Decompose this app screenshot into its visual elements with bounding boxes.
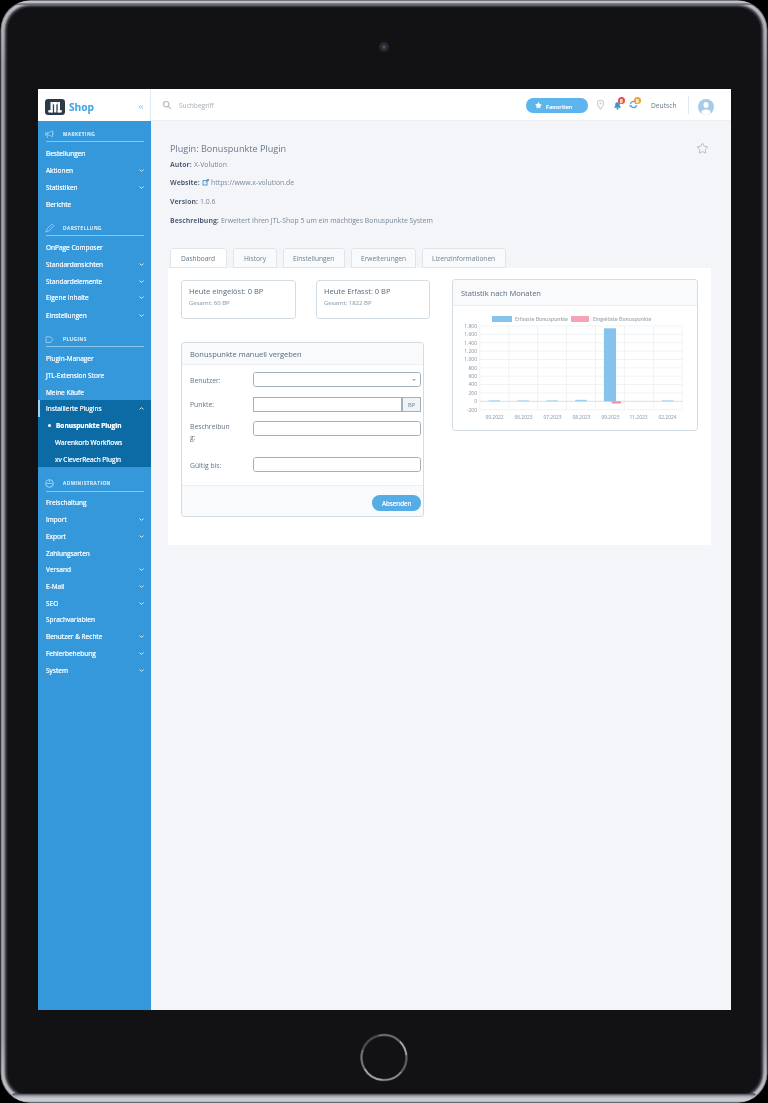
- button[interactable]: Standardelemente: [38, 273, 151, 290]
- staticText: Punkte:: [190, 400, 215, 409]
- staticText: Version:: [170, 197, 198, 206]
- button[interactable]: OnPage Composer: [38, 239, 151, 256]
- staticText: Installierte Plugins: [46, 404, 102, 413]
- button[interactable]: Dashboard: [170, 248, 227, 268]
- staticText: Suchbegriff: [179, 101, 214, 110]
- button[interactable]: Benutzerkonto: [698, 99, 714, 115]
- staticText: Lizenzinformationen: [432, 254, 496, 263]
- button[interactable]: Statistiken: [38, 179, 151, 196]
- staticText: 06.2023: [514, 414, 533, 421]
- button[interactable]: Fehlerbehebung: [38, 645, 151, 662]
- button[interactable]: Standardansichten: [38, 256, 151, 273]
- staticText: 07.2023: [543, 414, 562, 421]
- button[interactable]: Sprachvariablen: [38, 611, 151, 628]
- button[interactable]: Einstellungen: [38, 307, 151, 324]
- button[interactable]: Lizenzinformationen: [422, 248, 506, 268]
- button[interactable]: [253, 457, 421, 472]
- staticText: MARKETING: [63, 131, 96, 137]
- button[interactable]: Favoriten: [526, 98, 588, 113]
- staticText: X-Volution: [194, 160, 227, 169]
- button[interactable]: Export: [38, 528, 151, 545]
- button[interactable]: Aktionen: [38, 162, 151, 179]
- button[interactable]: Erweiterungen: [351, 248, 416, 268]
- staticText: PLUGINS: [63, 336, 87, 342]
- button[interactable]: Bonuspunkte Plugin: [38, 417, 151, 434]
- staticText: https://www.x-volution.de: [211, 178, 295, 187]
- button[interactable]: Heute eingelöst: 0 BP: [181, 280, 296, 319]
- button[interactable]: Berichte: [38, 196, 151, 213]
- button[interactable]: Benachrichtigungen: [613, 97, 626, 110]
- button[interactable]: E-Mail: [38, 578, 151, 595]
- staticText: 400: [468, 381, 477, 388]
- staticText: Standardelemente: [46, 277, 103, 286]
- staticText: Bonuspunkte manuell vergeben: [190, 349, 302, 359]
- button[interactable]: Freischaltung: [38, 494, 151, 511]
- button[interactable]: [253, 421, 421, 436]
- staticText: 11.2023: [629, 414, 648, 421]
- button[interactable]: [253, 372, 421, 387]
- staticText: Export: [46, 532, 66, 541]
- staticText: 09.2022: [485, 414, 504, 421]
- staticText: Statistiken: [46, 183, 78, 192]
- staticText: 0: [620, 98, 623, 104]
- staticText: Statistik nach Monaten: [461, 288, 541, 298]
- button[interactable]: Einstellungen: [283, 248, 345, 268]
- staticText: 1.200: [464, 348, 477, 355]
- staticText: History: [244, 254, 266, 263]
- staticText: Freischaltung: [46, 498, 87, 507]
- button[interactable]: JTL-Extension Store: [38, 367, 151, 384]
- other: Standort: [596, 100, 605, 109]
- staticText: Fehlerbehebung: [46, 649, 96, 658]
- button[interactable]: xv CleverReach Plugin: [38, 451, 151, 468]
- staticText: 800: [468, 365, 477, 372]
- staticText: Standardansichten: [46, 260, 104, 269]
- staticText: System: [46, 666, 68, 675]
- button[interactable]: Import: [38, 511, 151, 528]
- button[interactable]: Deutsch: [651, 101, 677, 110]
- staticText: 1.000: [464, 356, 477, 363]
- button[interactable]: Installierte Plugins: [38, 400, 151, 417]
- staticText: OnPage Composer: [46, 243, 103, 252]
- staticText: Erweitert Ihren JTL-Shop 5 um ein mächti…: [221, 216, 433, 225]
- staticText: 1.400: [464, 340, 477, 347]
- button[interactable]: Shop: [38, 89, 151, 121]
- staticText: Heute eingelöst: 0 BP: [189, 286, 264, 296]
- staticText: Berichte: [46, 200, 72, 209]
- button[interactable]: Als Favorit markieren: [695, 141, 709, 155]
- staticText: Erfasste Bonuspunkte: [515, 315, 569, 322]
- button[interactable]: Aktualisierungen: [629, 97, 642, 110]
- staticText: Eigene Inhalte: [46, 293, 89, 302]
- button[interactable]: Absenden: [372, 495, 421, 511]
- staticText: JTL-Extension Store: [46, 371, 105, 380]
- staticText: Dashboard: [181, 254, 216, 263]
- button[interactable]: Versand: [38, 561, 151, 578]
- staticText: Beschreibung:: [190, 422, 233, 442]
- button[interactable]: SEO: [38, 595, 151, 612]
- staticText: Benutzer:: [190, 376, 221, 385]
- button[interactable]: Benutzer & Rechte: [38, 628, 151, 645]
- staticText: Zahlungsarten: [46, 549, 90, 558]
- staticText: Bonuspunkte Plugin: [56, 421, 122, 430]
- staticText: -200: [466, 407, 477, 414]
- staticText: Autor:: [170, 160, 192, 169]
- button[interactable]: Zahlungsarten: [38, 545, 151, 562]
- button[interactable]: Bestellungen: [38, 145, 151, 162]
- staticText: 200: [468, 390, 477, 397]
- staticText: 08.2023: [572, 414, 591, 421]
- staticText: Favoriten: [546, 102, 573, 110]
- button[interactable]: History: [233, 248, 277, 268]
- staticText: 09.2023: [601, 414, 620, 421]
- staticText: E-Mail: [46, 582, 65, 591]
- staticText: Einstellungen: [46, 311, 87, 320]
- staticText: Bestellungen: [46, 149, 86, 158]
- staticText: Import: [46, 515, 67, 524]
- button[interactable]: System: [38, 662, 151, 679]
- button[interactable]: Eigene Inhalte: [38, 289, 151, 306]
- button[interactable]: Heute Erfasst: 0 BP: [316, 280, 430, 319]
- button[interactable]: Warenkorb Workflows: [38, 434, 151, 451]
- staticText: 1.0.6: [200, 197, 216, 206]
- button[interactable]: Plugin-Manager: [38, 350, 151, 367]
- button[interactable]: Meine Käufe: [38, 384, 151, 401]
- staticText: Warenkorb Workflows: [55, 438, 123, 447]
- button[interactable]: [253, 397, 402, 412]
